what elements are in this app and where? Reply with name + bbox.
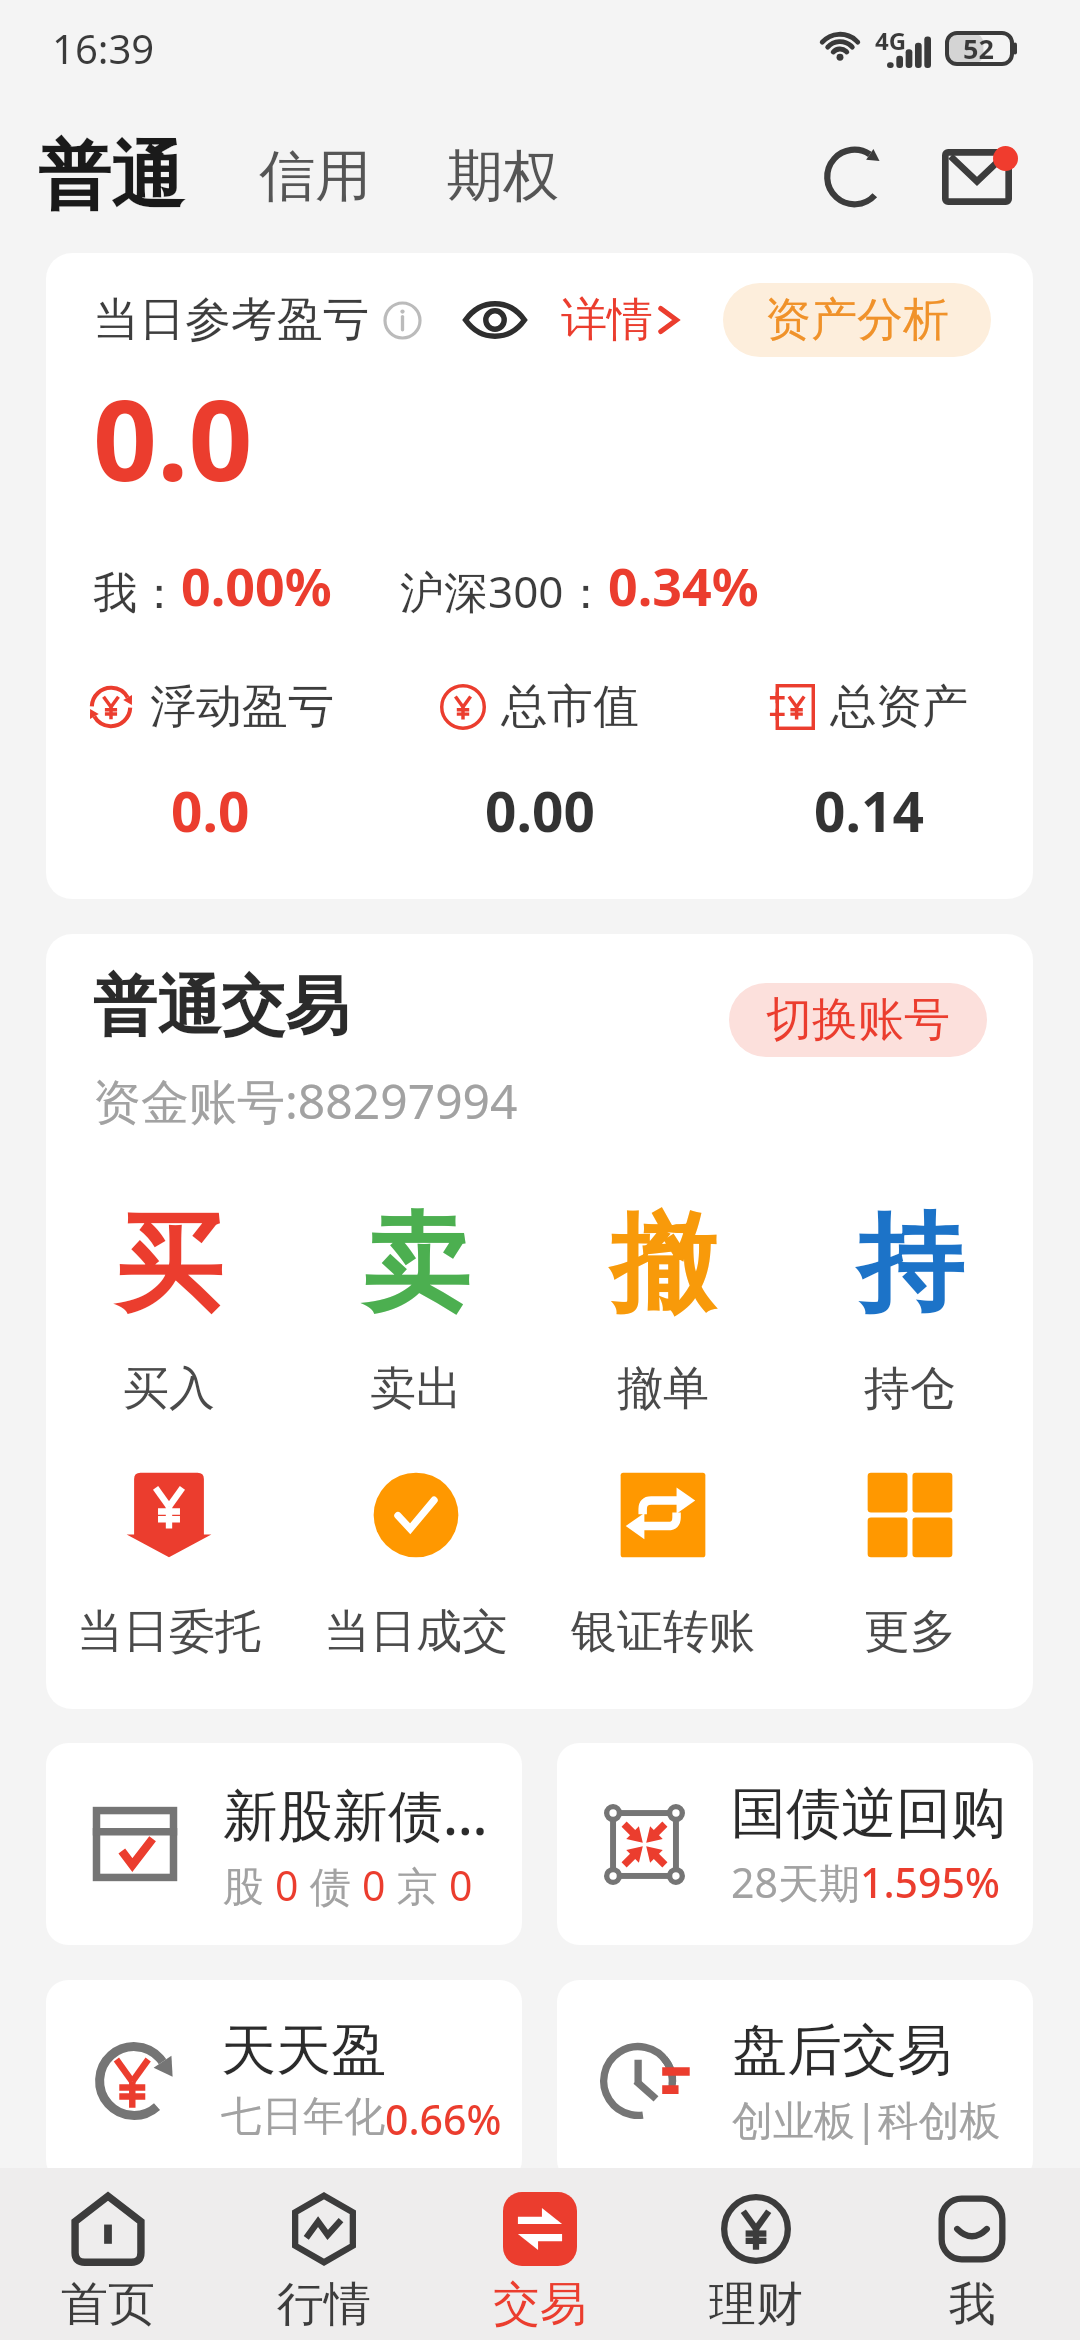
staticText: 理财 — [709, 2275, 803, 2334]
button[interactable]: 信用 — [243, 141, 387, 212]
staticText: 行情 — [277, 2275, 371, 2334]
staticText: 京 — [386, 1857, 449, 1913]
staticText: 我 — [949, 2275, 996, 2334]
button[interactable]: 首页 — [0, 2168, 216, 2340]
staticText: 浮动盈亏 — [150, 678, 334, 736]
staticText: 银证转账 — [571, 1603, 755, 1661]
button[interactable]: 当日参考盈亏 — [46, 253, 1033, 899]
button[interactable]: Toggle visibility — [463, 297, 527, 343]
staticText: 0.0 — [93, 361, 253, 514]
staticText: 当日成交 — [324, 1603, 508, 1661]
staticText: 七日年化 — [221, 2091, 385, 2143]
staticText: 0.34% — [608, 550, 759, 621]
staticText: 卖出 — [370, 1360, 462, 1418]
staticText: 持 — [857, 1198, 963, 1332]
staticText: 资金账号:88297994 — [93, 1068, 518, 1134]
staticText: 盘后交易 — [732, 2016, 952, 2085]
button[interactable]: 国债逆回购 — [557, 1743, 1033, 1945]
staticText: 28天期 — [731, 1854, 860, 1910]
staticText: 0 — [275, 1857, 299, 1913]
staticText: 详情 — [561, 291, 653, 349]
staticText: 买 — [116, 1198, 222, 1332]
button[interactable]: 更多 — [786, 1460, 1033, 1661]
button[interactable]: 卖 — [292, 1198, 539, 1418]
staticText: 普通 — [38, 131, 184, 223]
staticText: 天天盈 — [221, 2016, 386, 2085]
button[interactable]: 交易 — [432, 2168, 648, 2340]
button[interactable]: 当日委托 — [46, 1460, 292, 1661]
button[interactable]: 撤 — [539, 1198, 786, 1418]
staticText: 当日委托 — [77, 1603, 261, 1661]
staticText: 0 — [362, 1857, 386, 1913]
button[interactable]: 详情 — [561, 291, 683, 349]
staticText: 0.66% — [385, 2091, 502, 2147]
staticText: 创业板|科创板 — [732, 2091, 1001, 2147]
button[interactable]: 盘后交易 — [557, 1980, 1033, 2182]
staticText: 当日参考盈亏 — [93, 291, 369, 349]
staticText: 新股新债… — [223, 1776, 488, 1851]
staticText: 0.00 — [485, 773, 595, 848]
staticText: 资产分析 — [765, 291, 949, 349]
staticText: 0.0 — [171, 773, 250, 848]
staticText: 卖 — [363, 1198, 469, 1332]
button[interactable]: 切换账号 — [729, 983, 987, 1057]
staticText: 普通交易 — [93, 966, 349, 1047]
staticText: 我： — [93, 566, 181, 621]
button[interactable]: 银证转账 — [539, 1460, 786, 1661]
staticText: 撤 — [610, 1198, 716, 1332]
staticText: 撤单 — [617, 1360, 709, 1418]
button[interactable]: 持 — [786, 1198, 1033, 1418]
button[interactable]: 行情 — [216, 2168, 432, 2340]
staticText: 交易 — [493, 2275, 587, 2334]
staticText: 切换账号 — [766, 991, 950, 1049]
button[interactable]: 资产分析 — [723, 283, 991, 357]
staticText: 持仓 — [864, 1360, 956, 1418]
button[interactable]: 新股新债… — [46, 1743, 522, 1945]
button[interactable]: 天天盈 — [46, 1980, 522, 2182]
staticText: 更多 — [864, 1603, 956, 1661]
staticText: 总市值 — [501, 678, 639, 736]
button[interactable]: 理财 — [648, 2168, 864, 2340]
staticText: 4G — [875, 24, 907, 57]
button[interactable]: 买 — [46, 1198, 292, 1418]
button[interactable]: Refresh — [802, 122, 912, 232]
staticText: 1.595% — [860, 1854, 1000, 1910]
staticText: 沪深300： — [400, 561, 608, 621]
staticText: 买入 — [123, 1360, 215, 1418]
staticText: 0 — [449, 1857, 473, 1913]
staticText: 债 — [299, 1857, 362, 1913]
button[interactable]: 我 — [864, 2168, 1080, 2340]
staticText: 信用 — [259, 141, 371, 212]
staticText: 16:39 — [52, 21, 155, 75]
staticText: 期权 — [447, 141, 559, 212]
button[interactable]: Info — [383, 301, 422, 340]
staticText: 国债逆回购 — [731, 1779, 1006, 1848]
button[interactable]: Messages — [922, 122, 1032, 232]
staticText: 52 — [963, 30, 994, 65]
button[interactable]: 期权 — [431, 141, 575, 212]
staticText: 首页 — [61, 2275, 155, 2334]
staticText: 0.14 — [814, 773, 924, 848]
button[interactable]: 普通 — [22, 131, 200, 223]
staticText: 股 — [223, 1857, 275, 1913]
button[interactable]: 当日成交 — [292, 1460, 539, 1661]
staticText: 总资产 — [830, 678, 968, 736]
staticText: 0.00% — [181, 550, 332, 621]
